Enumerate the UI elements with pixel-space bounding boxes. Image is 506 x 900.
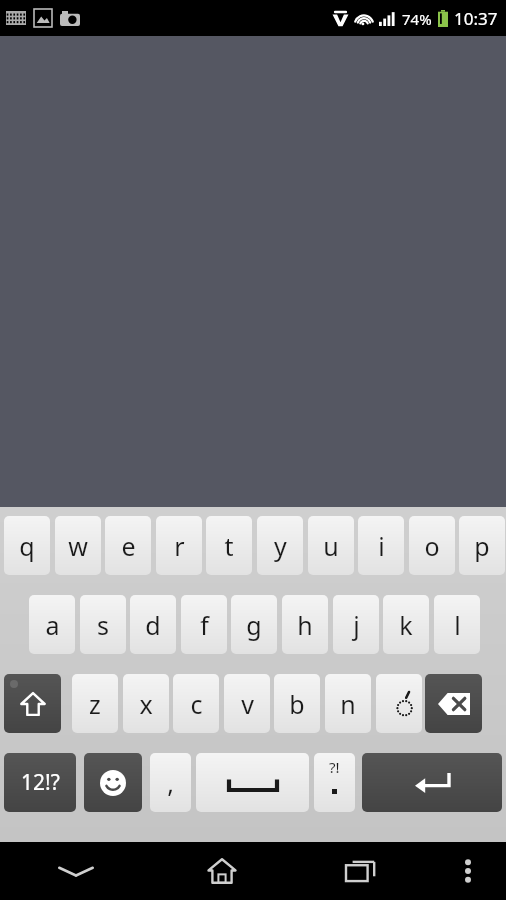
staticText: y: [274, 529, 287, 563]
button[interactable]: h: [282, 595, 328, 654]
staticText: x: [139, 687, 153, 721]
button[interactable]: Hide keyboard: [0, 842, 152, 900]
button[interactable]: [196, 753, 309, 812]
staticText: h: [297, 608, 313, 642]
button[interactable]: More options: [430, 842, 506, 900]
button[interactable]: 12!?: [4, 753, 76, 812]
staticText: j: [353, 608, 360, 642]
button[interactable]: x: [123, 674, 169, 733]
staticText: ?!: [329, 757, 340, 777]
staticText: q: [19, 529, 35, 563]
button[interactable]: o: [409, 516, 455, 575]
button[interactable]: f: [181, 595, 227, 654]
button[interactable]: p: [459, 516, 505, 575]
button[interactable]: g: [231, 595, 277, 654]
staticText: 12!?: [21, 768, 60, 797]
button[interactable]: v: [224, 674, 270, 733]
staticText: e: [121, 529, 136, 563]
button[interactable]: key: [425, 674, 482, 733]
button[interactable]: Home: [152, 842, 291, 900]
button[interactable]: z: [72, 674, 118, 733]
staticText: a: [45, 608, 60, 642]
button[interactable]: j: [333, 595, 379, 654]
staticText: k: [399, 608, 413, 642]
button[interactable]: w: [55, 516, 101, 575]
button[interactable]: y: [257, 516, 303, 575]
staticText: f: [200, 608, 209, 642]
button[interactable]: [389, 674, 420, 733]
button[interactable]: t: [206, 516, 252, 575]
staticText: n: [340, 687, 356, 721]
staticText: p: [474, 529, 490, 563]
button[interactable]: ?!: [314, 753, 355, 812]
button[interactable]: i: [358, 516, 404, 575]
staticText: c: [190, 687, 203, 721]
staticText: r: [174, 529, 185, 563]
button[interactable]: ,: [150, 753, 191, 812]
button[interactable]: s: [80, 595, 126, 654]
button[interactable]: r: [156, 516, 202, 575]
staticText: t: [224, 529, 234, 563]
button[interactable]: Recents: [291, 842, 430, 900]
button[interactable]: n: [325, 674, 371, 733]
button[interactable]: d: [130, 595, 176, 654]
button[interactable]: k: [383, 595, 429, 654]
staticText: o: [424, 529, 440, 563]
button[interactable]: c: [173, 674, 219, 733]
button[interactable]: e: [105, 516, 151, 575]
button[interactable]: key: [84, 753, 142, 812]
staticText: i: [378, 529, 385, 563]
staticText: 10:37: [454, 7, 498, 30]
staticText: d: [145, 608, 161, 642]
staticText: m: [387, 687, 411, 721]
staticText: ,: [167, 766, 174, 800]
staticText: b: [289, 687, 305, 721]
staticText: g: [246, 608, 262, 642]
button[interactable]: q: [4, 516, 50, 575]
staticText: z: [89, 687, 101, 721]
button[interactable]: key: [4, 674, 61, 733]
staticText: w: [68, 529, 88, 563]
button[interactable]: m: [376, 674, 422, 733]
staticText: s: [97, 608, 109, 642]
button[interactable]: l: [434, 595, 480, 654]
button[interactable]: a: [29, 595, 75, 654]
button[interactable]: key: [362, 753, 502, 812]
button[interactable]: u: [308, 516, 354, 575]
button[interactable]: b: [274, 674, 320, 733]
staticText: v: [241, 687, 254, 721]
staticText: u: [323, 529, 339, 563]
staticText: 74%: [402, 9, 432, 29]
staticText: l: [454, 608, 461, 642]
